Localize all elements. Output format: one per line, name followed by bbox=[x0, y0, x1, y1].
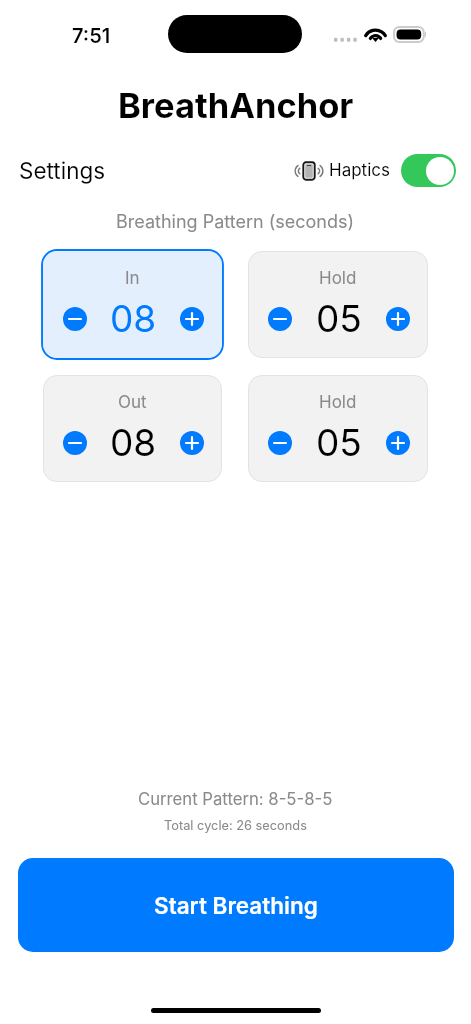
button[interactable]: Hold bbox=[248, 251, 428, 358]
button[interactable]: Increase Hold bbox=[386, 431, 410, 455]
button[interactable]: Hold bbox=[248, 375, 428, 482]
staticText: 08 bbox=[110, 296, 157, 341]
staticText: In bbox=[125, 268, 140, 289]
staticText: 08 bbox=[110, 420, 157, 465]
staticText: 05 bbox=[316, 296, 362, 341]
button[interactable]: Start Breathing bbox=[18, 858, 454, 952]
button[interactable]: Increase Out bbox=[180, 431, 204, 455]
staticText: Hold bbox=[319, 392, 357, 413]
staticText: Haptics bbox=[329, 160, 390, 181]
button[interactable]: Increase In bbox=[180, 307, 204, 331]
staticText: Out bbox=[118, 392, 147, 413]
button[interactable]: Decrease Hold bbox=[268, 431, 292, 455]
staticText: Breathing Pattern (seconds) bbox=[116, 211, 355, 233]
button[interactable]: Increase Hold bbox=[386, 307, 410, 331]
staticText: Settings bbox=[19, 157, 106, 184]
button[interactable]: Out bbox=[43, 375, 222, 482]
staticText: Hold bbox=[319, 268, 357, 289]
button[interactable]: Decrease Out bbox=[63, 431, 87, 455]
button[interactable]: Toggle haptics bbox=[401, 154, 456, 187]
button[interactable]: In bbox=[43, 251, 222, 358]
staticText: Total cycle: 26 seconds bbox=[164, 818, 307, 833]
staticText: Current Pattern: 8-5-8-5 bbox=[138, 789, 333, 809]
staticText: Start Breathing bbox=[154, 892, 318, 919]
staticText: BreathAnchor bbox=[118, 85, 354, 127]
staticText: 7:51 bbox=[72, 24, 111, 48]
staticText: 05 bbox=[316, 420, 362, 465]
button[interactable]: Decrease Hold bbox=[268, 307, 292, 331]
button[interactable]: Decrease In bbox=[63, 307, 87, 331]
